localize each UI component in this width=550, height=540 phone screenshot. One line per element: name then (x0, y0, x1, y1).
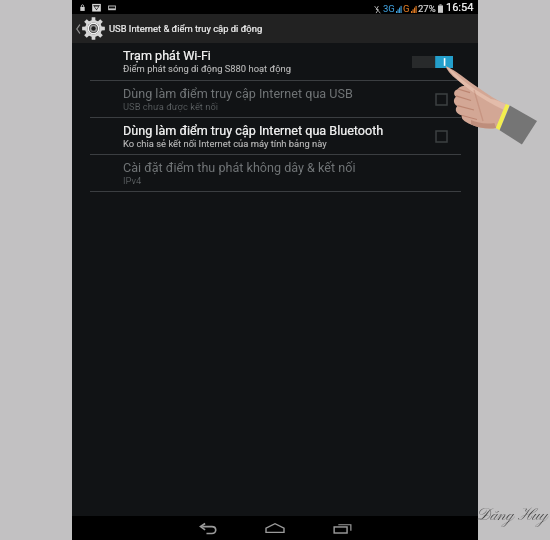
button[interactable]: Wi-Fi hotspot switch, on (412, 56, 453, 68)
button[interactable]: Checkbox, unchecked (436, 94, 447, 105)
button[interactable]: Checkbox, unchecked (436, 131, 447, 142)
staticText: 16:54 (446, 1, 474, 14)
staticText: 3G (383, 3, 395, 14)
staticText: Dùng làm điểm truy cập Internet qua Blue… (123, 123, 384, 138)
staticText: IPv4 (123, 175, 142, 186)
staticText: USB Internet & điểm truy cập di động (109, 23, 263, 34)
staticText: G (403, 3, 410, 14)
button[interactable]: Dùng làm điểm truy cập Internet qua Blue… (72, 118, 478, 154)
staticText: USB chưa được kết nối (123, 101, 219, 112)
button[interactable]: Cài đặt điểm thu phát không dây & kết nố… (72, 155, 478, 191)
button[interactable]: Trạm phát Wi-Fi (72, 43, 478, 80)
staticText: Dùng làm điểm truy cập Internet qua USB (123, 86, 353, 101)
button[interactable]: Recent apps (308, 516, 376, 540)
button[interactable]: Navigate up (72, 14, 478, 43)
staticText: Cài đặt điểm thu phát không dây & kết nố… (123, 160, 356, 175)
button[interactable]: Back (174, 516, 242, 540)
staticText: Điểm phát sóng di động S880 hoạt động (123, 63, 291, 74)
staticText: Đăng Huy (477, 505, 548, 526)
button[interactable]: Dùng làm điểm truy cập Internet qua USB (72, 81, 478, 117)
staticText: 27% (418, 3, 436, 14)
staticText: Trạm phát Wi-Fi (123, 48, 211, 63)
staticText: Ko chia sẻ kết nối Internet của máy tính… (123, 138, 327, 149)
button[interactable]: Home (242, 516, 308, 540)
